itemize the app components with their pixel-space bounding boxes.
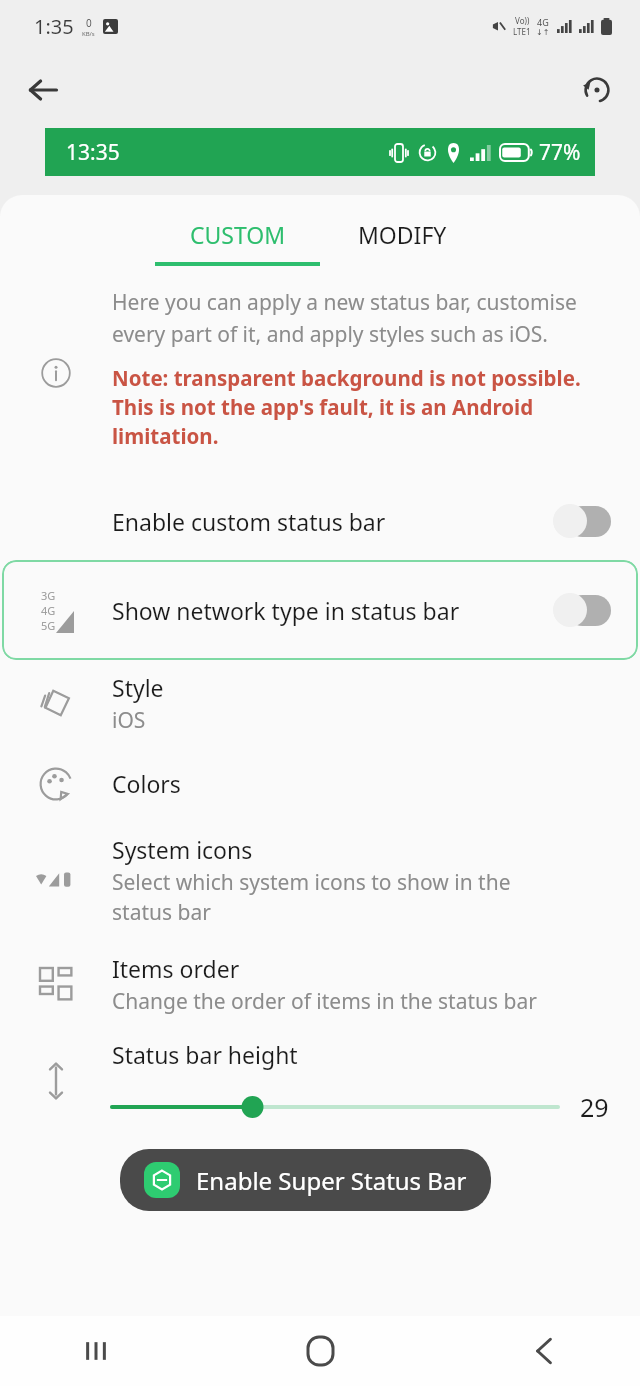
staticText: System icons	[112, 834, 253, 865]
staticText: 13:35	[66, 138, 120, 167]
button[interactable]: 3G	[2, 560, 638, 660]
button[interactable]: Colors	[0, 746, 640, 821]
staticText: Show network type in status bar	[112, 595, 553, 626]
button[interactable]: CUSTOM	[155, 195, 320, 278]
button[interactable]: MODIFY	[320, 195, 485, 278]
staticText: Here you can apply a new status bar, cus…	[112, 288, 614, 348]
staticText: 3G	[41, 588, 56, 603]
staticText: 5G	[41, 618, 56, 633]
staticText: Status bar height	[112, 1039, 298, 1070]
staticText: Select which system icons to show in the…	[112, 868, 511, 926]
button[interactable]: System icons	[0, 821, 640, 939]
staticText: LTE1	[513, 26, 531, 37]
button[interactable]: Home	[284, 1316, 356, 1386]
staticText: 1:35	[34, 13, 74, 40]
button[interactable]: Status bar height	[0, 1029, 640, 1133]
staticText: 29	[580, 1090, 609, 1124]
staticText: 77%	[539, 138, 581, 167]
staticText: Items order	[112, 953, 240, 984]
staticText: Vo))	[515, 15, 530, 26]
button[interactable]: Recents	[60, 1316, 132, 1386]
button[interactable]: Items order	[0, 939, 640, 1029]
staticText: 4G	[41, 603, 56, 618]
staticText: MODIFY	[358, 219, 447, 250]
staticText: Colors	[112, 768, 181, 799]
staticText: Enable custom status bar	[112, 506, 386, 537]
staticText: 0	[86, 16, 92, 30]
button[interactable]: Back	[508, 1316, 580, 1386]
staticText: 4G	[537, 16, 549, 28]
button[interactable]: Reset	[568, 61, 626, 119]
staticText: CUSTOM	[190, 219, 286, 250]
button[interactable]: Style	[0, 660, 640, 746]
staticText: Style	[112, 672, 164, 703]
staticText: ↓↑	[536, 28, 550, 37]
staticText: KB/s	[82, 30, 95, 38]
staticText: Change the order of items in the status …	[112, 987, 537, 1016]
staticText: Note: transparent background is not poss…	[112, 364, 614, 450]
button[interactable]: Back	[14, 61, 72, 119]
button[interactable]: Enable custom status bar	[0, 482, 640, 560]
staticText: Enable Super Status Bar	[196, 1164, 467, 1197]
staticText: iOS	[112, 706, 146, 735]
